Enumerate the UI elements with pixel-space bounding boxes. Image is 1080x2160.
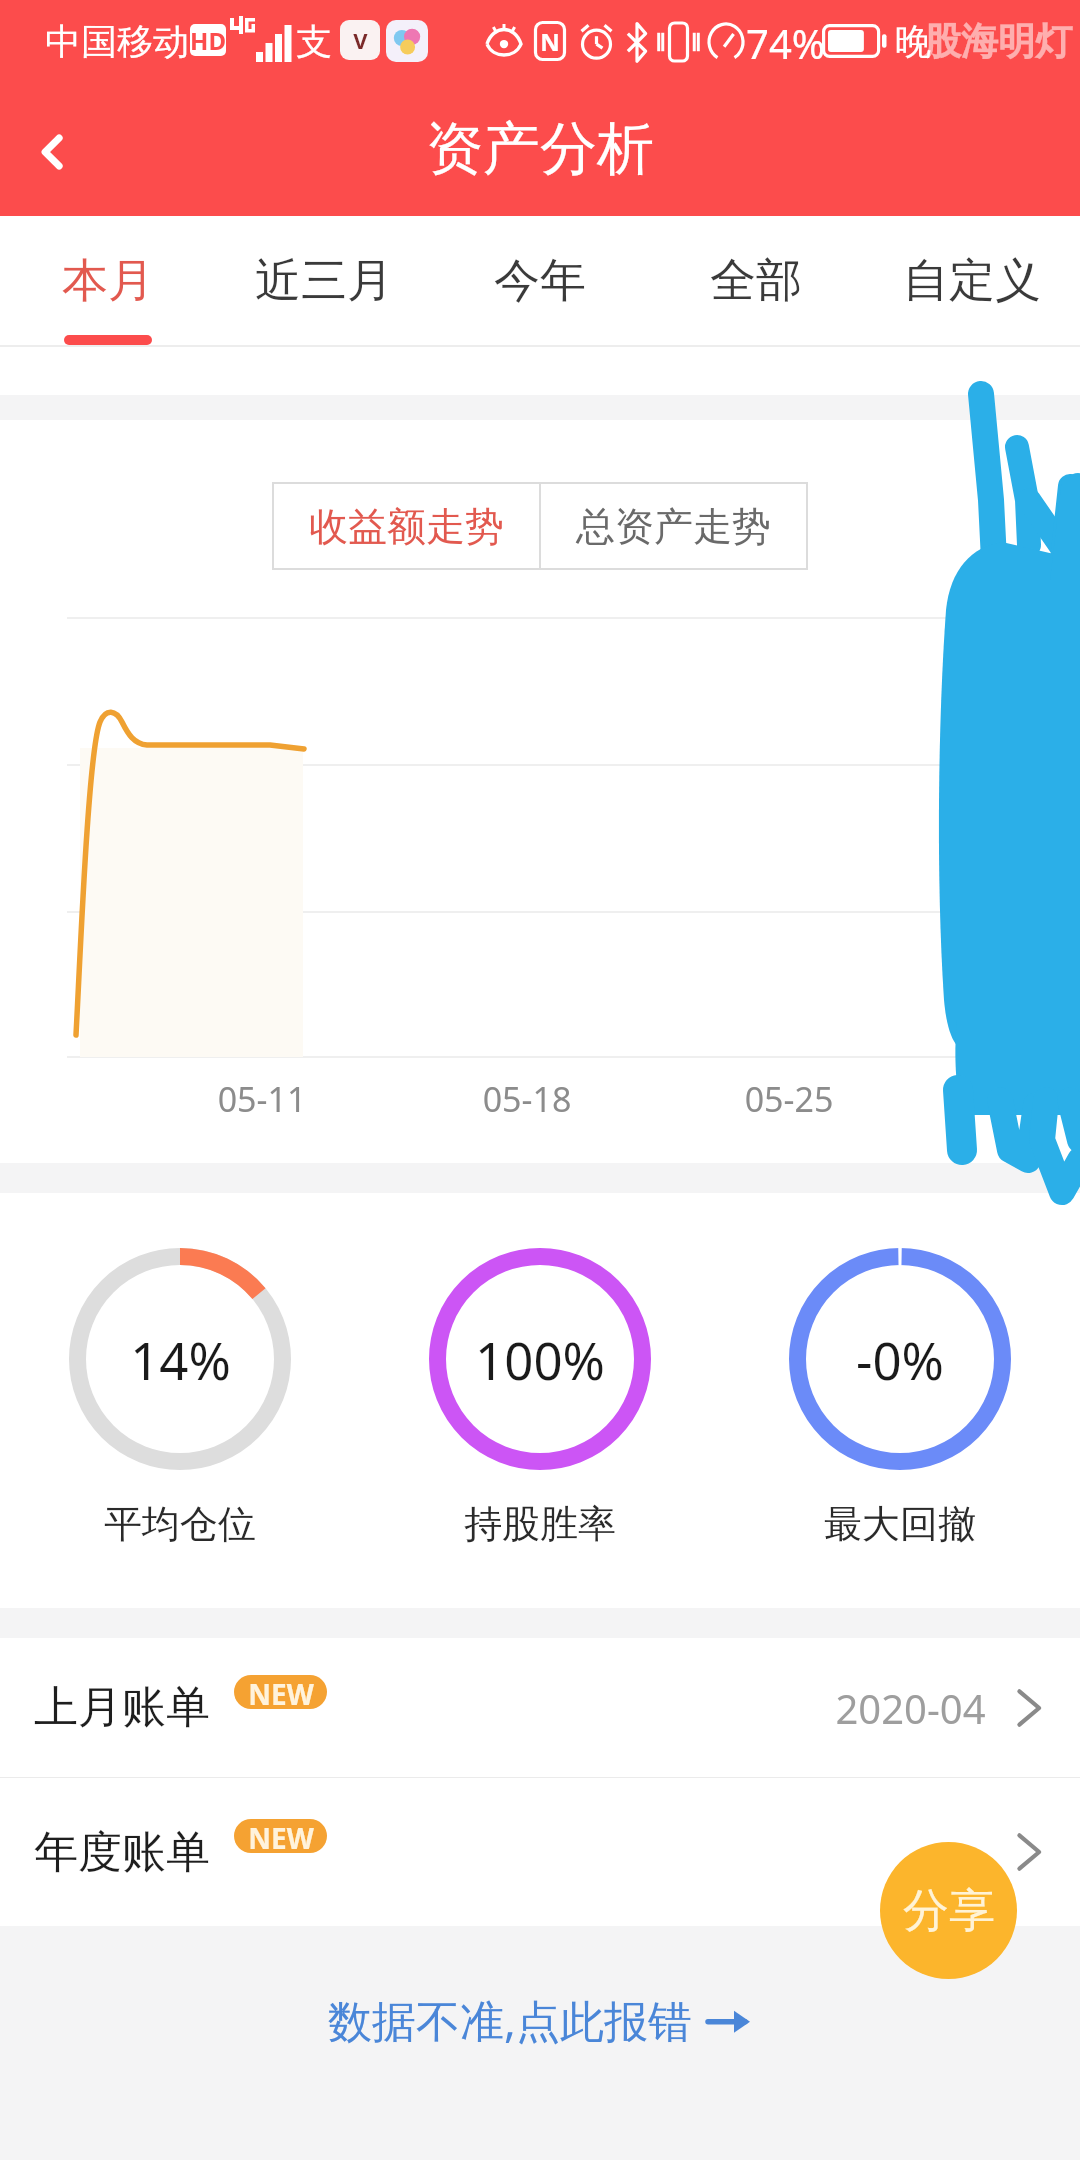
staticText: 最大回撤 <box>824 1500 976 1548</box>
staticText: V <box>353 25 368 55</box>
staticText: 平均仓位 <box>104 1500 256 1548</box>
staticText: 股海明灯 <box>924 18 1072 65</box>
staticText: 2020-04 <box>835 1681 986 1735</box>
staticText: -0% <box>856 1325 944 1394</box>
staticText: NEW <box>248 1819 314 1853</box>
staticText: 年度账单 <box>34 1825 210 1880</box>
staticText: 今年 <box>494 252 586 310</box>
button[interactable]: 近三月 <box>216 216 432 395</box>
staticText: 近三月 <box>255 252 393 310</box>
button[interactable]: 收益额走势 <box>274 484 539 568</box>
staticText: 14% <box>130 1325 231 1394</box>
staticText: 晚 <box>895 19 931 64</box>
button[interactable]: 自定义 <box>864 216 1080 395</box>
staticText: 数据不准,点此报错 <box>328 1990 692 2050</box>
staticText: 本月 <box>62 252 154 310</box>
staticText: 分享 <box>903 1882 995 1940</box>
staticText: N <box>540 25 560 58</box>
button[interactable]: 年度账单 <box>0 1778 1080 1926</box>
staticText: 中国移动 <box>45 19 189 64</box>
button[interactable]: 分享 <box>880 1842 1017 1979</box>
button[interactable]: 本月 <box>0 216 216 395</box>
staticText: NEW <box>248 1675 314 1709</box>
staticText: 资产分析 <box>426 113 654 185</box>
staticText: 74% <box>746 16 825 70</box>
staticText: 100% <box>475 1325 605 1394</box>
staticText: 持股胜率 <box>464 1500 616 1548</box>
staticText: 收益额走势 <box>309 502 504 551</box>
button[interactable]: 今年 <box>432 216 648 395</box>
staticText: 05-11 <box>204 1076 320 1122</box>
button[interactable]: 上月账单 <box>0 1638 1080 1777</box>
staticText: 支 <box>296 19 332 64</box>
staticText: HD <box>190 24 226 56</box>
button[interactable]: 数据不准,点此报错 <box>328 1990 752 2050</box>
staticText: 上月账单 <box>34 1680 210 1735</box>
staticText: 05-18 <box>469 1076 585 1122</box>
button[interactable]: Back <box>0 88 110 216</box>
staticText: 总资产走势 <box>576 502 771 551</box>
staticText: 05-25 <box>731 1076 847 1122</box>
staticText: 自定义 <box>903 252 1041 310</box>
staticText: 全部 <box>710 252 802 310</box>
button[interactable]: 总资产走势 <box>541 484 806 568</box>
button[interactable]: 全部 <box>648 216 864 395</box>
